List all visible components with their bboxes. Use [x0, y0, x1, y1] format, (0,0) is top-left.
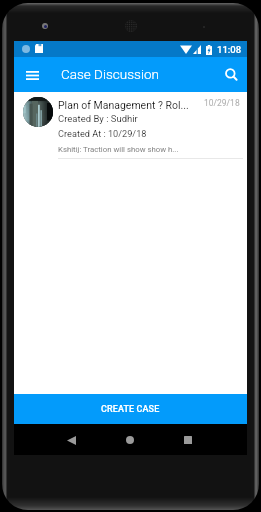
staticText: CREATE CASE: [101, 404, 160, 415]
button[interactable]: Search: [220, 64, 244, 88]
button[interactable]: Recent apps: [176, 428, 200, 452]
staticText: 11:08: [217, 44, 242, 55]
button[interactable]: Back: [59, 428, 83, 452]
staticText: 10/29/18: [204, 98, 240, 108]
button[interactable]: Home: [118, 428, 142, 452]
staticText: Plan of Management ? Rol...: [58, 99, 190, 111]
staticText: Created By : Sudhir: [58, 113, 138, 124]
button[interactable]: Plan of Management ? Rol...: [14, 92, 247, 159]
staticText: Case Discussion: [61, 66, 159, 82]
staticText: Created At : 10/29/18: [58, 128, 147, 139]
staticText: Kshitij: Traction will show show h...: [58, 145, 179, 154]
button[interactable]: CREATE CASE: [14, 394, 247, 424]
button[interactable]: Open navigation drawer: [20, 63, 44, 87]
